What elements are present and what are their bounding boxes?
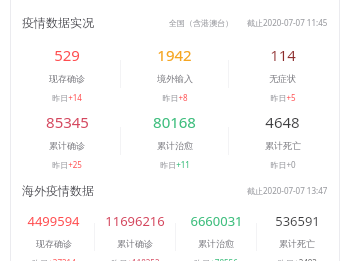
button[interactable]: 6660031 — [176, 212, 256, 261]
staticText: 境外输入 — [157, 73, 193, 84]
staticText: 114 — [270, 45, 296, 65]
staticText: 现存确诊 — [49, 73, 85, 84]
button[interactable]: 4648 — [229, 112, 336, 170]
button[interactable]: 4499594 — [13, 212, 94, 261]
staticText: 85345 — [46, 112, 89, 132]
staticText: 4648 — [265, 112, 300, 132]
button[interactable]: 海外疫情数据 — [0, 183, 350, 198]
staticText: 现存确诊 — [36, 238, 72, 249]
staticText: 4499594 — [27, 212, 80, 230]
button[interactable]: 1942 — [121, 45, 228, 103]
staticText: 昨日+25 — [52, 159, 82, 170]
staticText: 536591 — [275, 212, 320, 230]
staticText: 昨日+5 — [270, 92, 296, 103]
staticText: 昨日+78556 — [194, 257, 238, 261]
button[interactable]: 536591 — [257, 212, 337, 261]
button[interactable]: 114 — [229, 45, 336, 103]
button[interactable]: 11696216 — [95, 212, 175, 261]
button[interactable]: 85345 — [14, 112, 120, 170]
staticText: 累计死亡 — [265, 140, 301, 151]
staticText: 累计治愈 — [198, 238, 234, 249]
staticText: 累计确诊 — [49, 140, 85, 151]
staticText: 累计死亡 — [279, 238, 315, 249]
staticText: 昨日+0 — [270, 159, 296, 170]
staticText: 昨日+118252 — [111, 257, 160, 261]
staticText: 昨日+14 — [52, 92, 82, 103]
button[interactable]: 529 — [14, 45, 120, 103]
staticText: 全国（含港澳台） — [169, 18, 233, 28]
staticText: 11696216 — [105, 212, 165, 230]
staticText: 疫情数据实况 — [22, 15, 94, 30]
staticText: 80168 — [153, 112, 196, 132]
staticText: 截止2020-07-07 11:45 — [247, 17, 328, 28]
button[interactable]: 80168 — [121, 112, 228, 170]
staticText: 海外疫情数据 — [22, 183, 94, 198]
staticText: 529 — [54, 45, 80, 65]
staticText: 昨日+8 — [162, 92, 188, 103]
staticText: 昨日+11 — [160, 159, 190, 170]
button[interactable]: 疫情数据实况 — [0, 15, 350, 30]
staticText: 截止2020-07-07 13:47 — [247, 185, 328, 196]
staticText: 累计治愈 — [157, 140, 193, 151]
staticText: 累计确诊 — [117, 238, 153, 249]
staticText: 昨日+37214 — [32, 257, 76, 261]
staticText: 昨日+2482 — [278, 257, 317, 261]
staticText: 6660031 — [190, 212, 243, 230]
staticText: 无症状 — [269, 73, 296, 84]
staticText: 1942 — [157, 45, 192, 65]
